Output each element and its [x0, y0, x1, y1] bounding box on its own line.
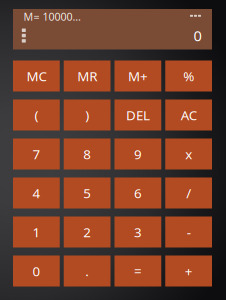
staticText: M= 10000…	[23, 9, 80, 24]
staticText: )	[85, 106, 89, 124]
staticText: =	[134, 262, 142, 280]
staticText: 1	[32, 223, 40, 241]
button[interactable]: AC	[165, 99, 212, 130]
button[interactable]: /	[165, 177, 212, 208]
button[interactable]: )	[64, 99, 111, 130]
staticText: 0	[32, 262, 40, 280]
staticText: MR	[77, 67, 97, 85]
staticText: 0	[193, 26, 201, 45]
staticText: 5	[83, 184, 91, 202]
staticText: 4	[32, 184, 40, 202]
button[interactable]: MC	[13, 60, 60, 91]
button[interactable]: %	[165, 60, 212, 91]
staticText: %	[183, 67, 194, 85]
button[interactable]: x	[165, 138, 212, 169]
staticText: 2	[83, 223, 91, 241]
staticText: 3	[134, 223, 142, 241]
staticText: 8	[83, 145, 91, 163]
button[interactable]: 6	[114, 177, 161, 208]
button[interactable]: 8	[64, 138, 111, 169]
button[interactable]: DEL	[114, 99, 161, 130]
button[interactable]: 3	[114, 216, 161, 247]
button[interactable]: 5	[64, 177, 111, 208]
staticText: 7	[32, 145, 40, 163]
button[interactable]: (	[13, 99, 60, 130]
staticText: +	[185, 262, 193, 280]
button[interactable]: 7	[13, 138, 60, 169]
button[interactable]: +	[165, 255, 212, 286]
staticText: 6	[134, 184, 142, 202]
button[interactable]: -	[165, 216, 212, 247]
staticText: AC	[181, 106, 197, 124]
staticText: MC	[26, 67, 46, 85]
button[interactable]: 9	[114, 138, 161, 169]
button[interactable]: 4	[13, 177, 60, 208]
staticText: M+	[128, 67, 148, 85]
button[interactable]: MR	[64, 60, 111, 91]
staticText: /	[186, 184, 191, 202]
button[interactable]: M+	[114, 60, 161, 91]
staticText: -	[187, 223, 191, 241]
button[interactable]: 2	[64, 216, 111, 247]
button[interactable]: .	[64, 255, 111, 286]
staticText: 9	[134, 145, 142, 163]
staticText: x	[185, 145, 192, 163]
staticText: DEL	[126, 106, 150, 124]
staticText: .	[85, 262, 89, 280]
button[interactable]: 0	[13, 255, 60, 286]
staticText: (	[34, 106, 38, 124]
button[interactable]: =	[114, 255, 161, 286]
button[interactable]: 1	[13, 216, 60, 247]
